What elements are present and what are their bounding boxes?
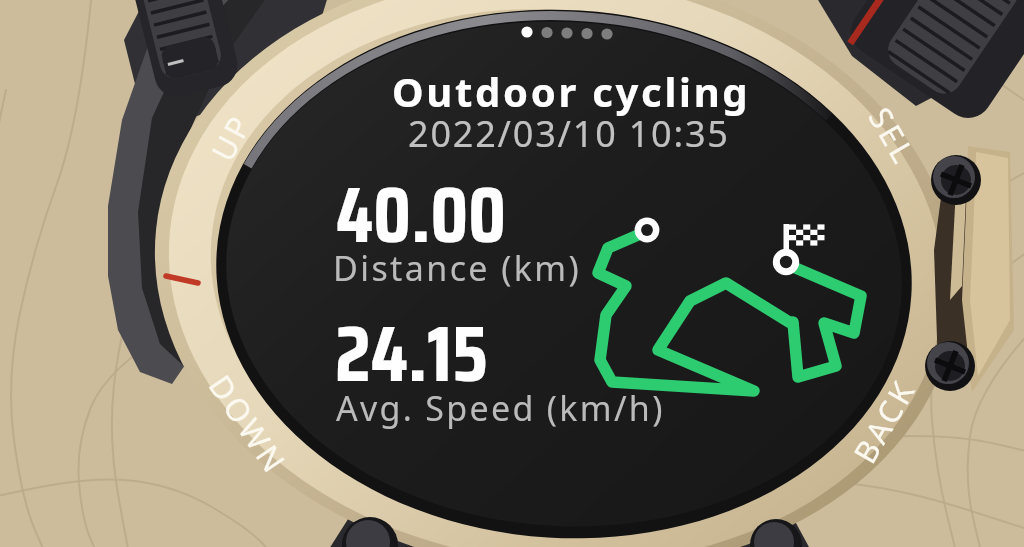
staticText: UP xyxy=(201,106,261,168)
staticText: Avg. Speed (km/h) xyxy=(336,385,665,431)
button[interactable]: Select button xyxy=(827,71,959,201)
staticText: Outdoor cycling xyxy=(392,64,751,118)
staticText: BACK xyxy=(843,371,925,470)
staticText: 40.00 xyxy=(336,152,507,276)
staticText: SEL xyxy=(860,99,926,172)
staticText: Distance (km) xyxy=(333,245,582,291)
button[interactable]: Up button xyxy=(174,88,287,186)
staticText: 2022/03/10 10:35 xyxy=(408,109,730,158)
staticText: DOWN xyxy=(200,367,297,482)
staticText: 24.15 xyxy=(335,291,488,415)
button[interactable]: Back button xyxy=(798,330,970,512)
button[interactable]: Down button xyxy=(156,327,340,520)
